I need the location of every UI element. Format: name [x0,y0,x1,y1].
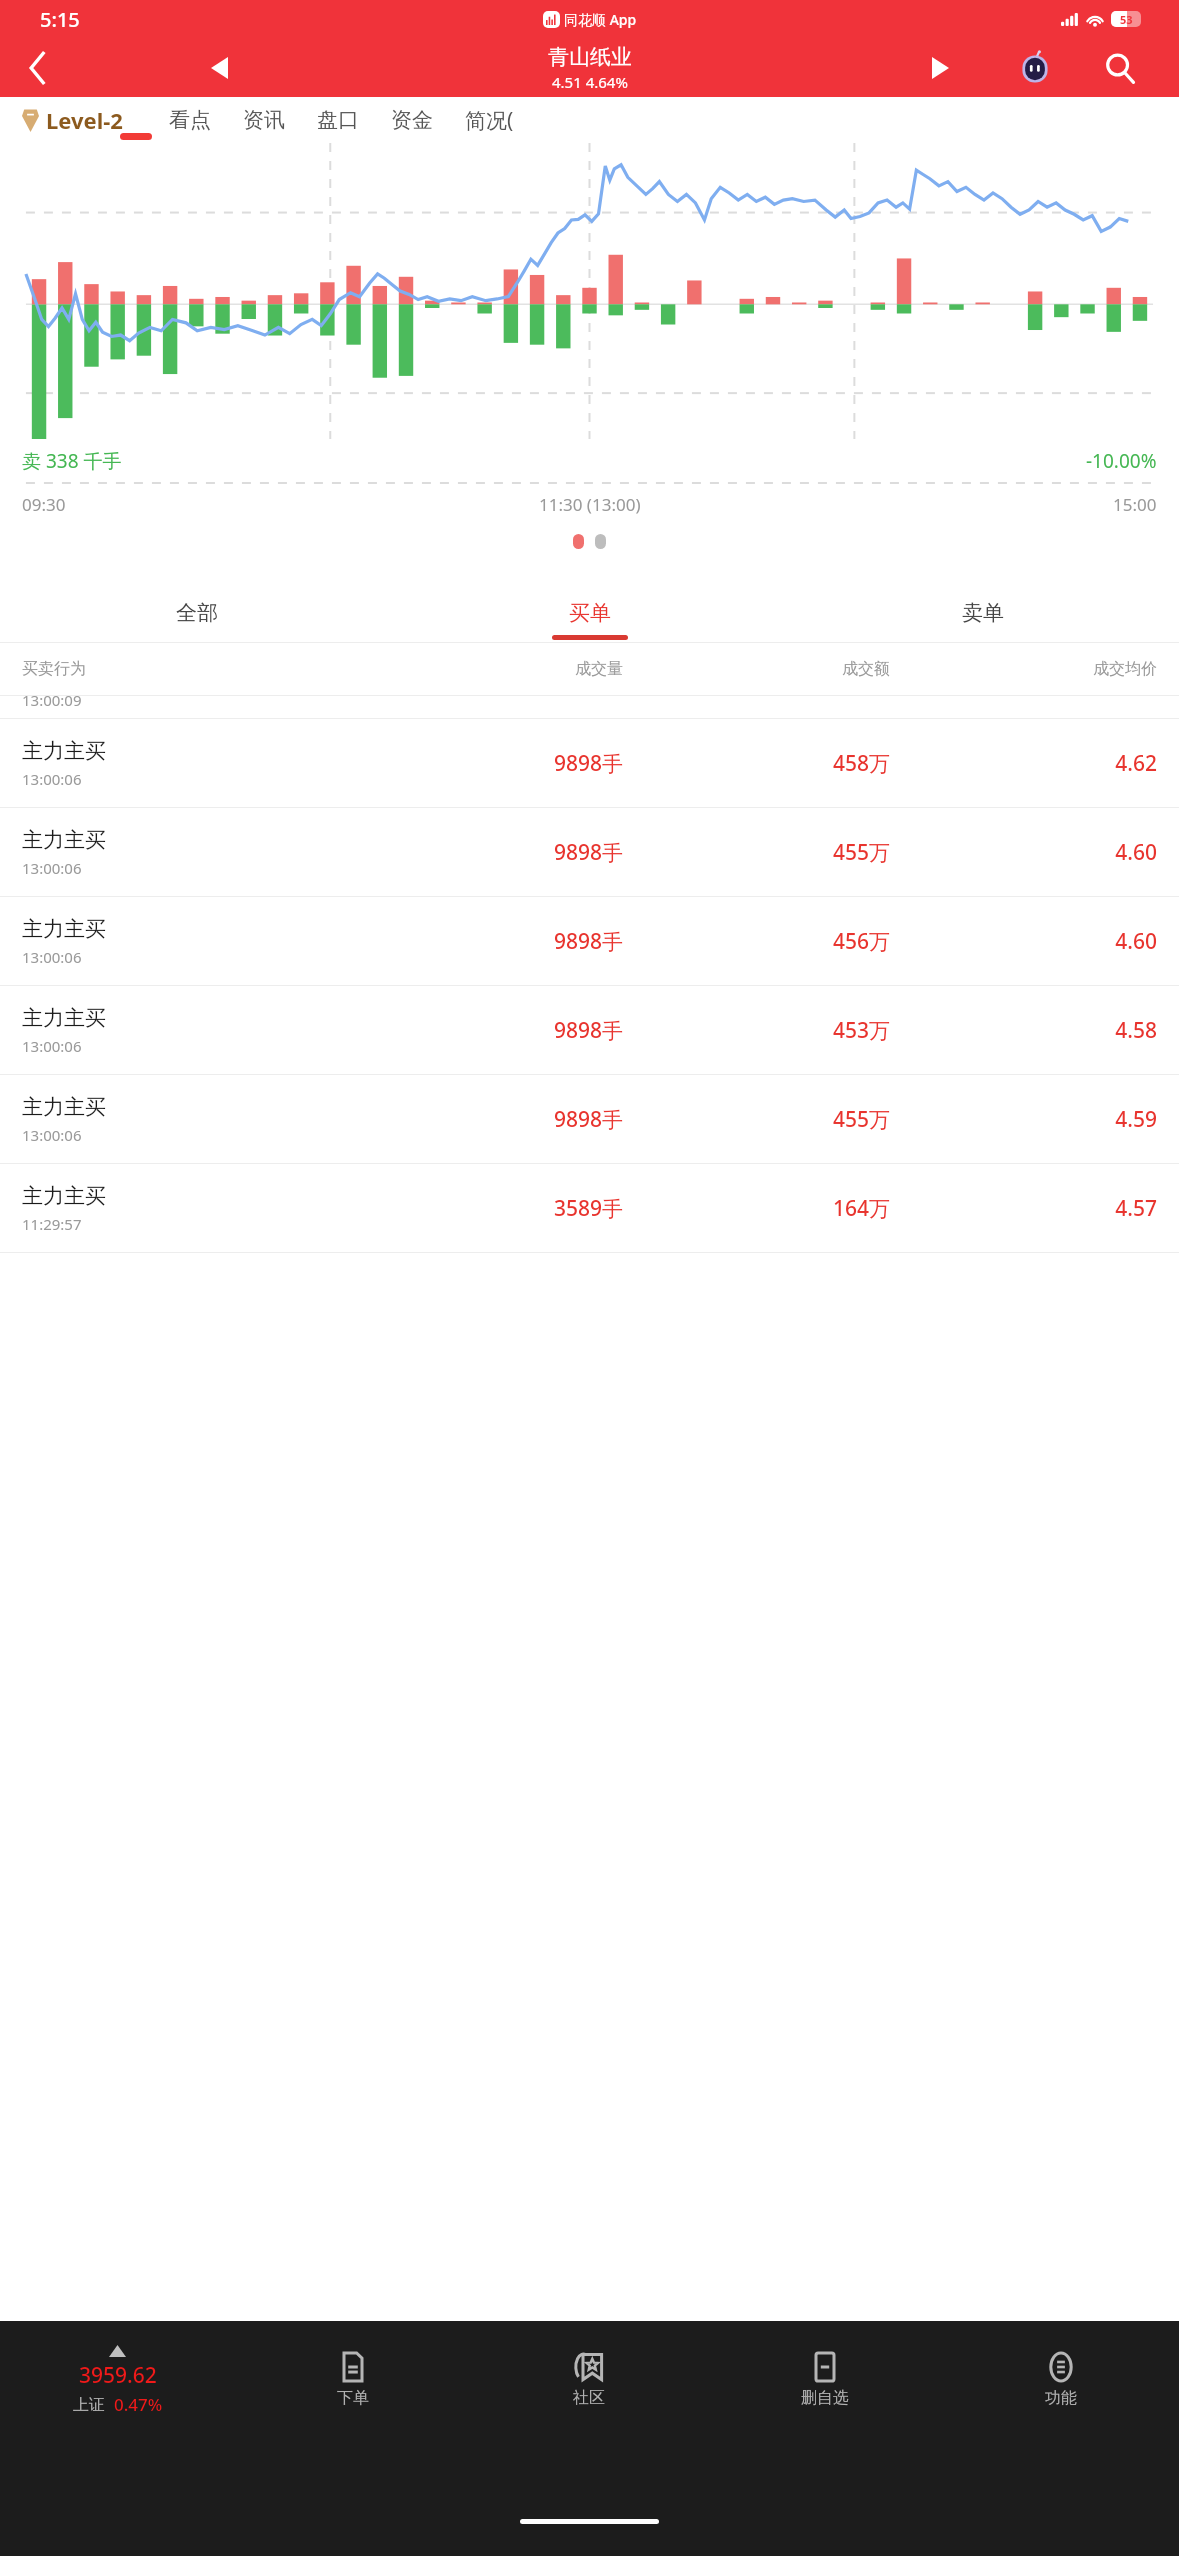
staticText: 主力主买 [22,827,106,853]
staticText: 主力主买 [22,916,106,942]
staticText: 主力主买 [22,1005,106,1031]
staticText: 13:00:06 [22,1036,82,1056]
staticText: 09:30 [22,493,66,516]
staticText: 上证 [73,2395,105,2415]
button[interactable]: 资金 [375,107,449,133]
button[interactable] [573,534,584,549]
staticText: 4.62 [890,749,1157,778]
staticText: 453万 [623,1016,890,1045]
staticText: 3959.62 [79,2361,157,2390]
button[interactable]: 主力主买 [0,719,1179,807]
button[interactable]: 13:00:09 [0,696,1179,718]
staticText: 13:00:06 [22,858,82,878]
staticText: 卖单 [962,600,1004,626]
staticText: 3589手 [356,1194,623,1223]
staticText: 13:00:06 [22,947,82,967]
staticText: 15:00 [1113,493,1157,516]
button[interactable]: 看点 [153,107,227,133]
button[interactable]: AI assistant [1009,42,1061,94]
staticText: 删自选 [801,2388,849,2408]
button[interactable]: 买单 [393,584,786,642]
staticText: Level-2 [46,105,123,135]
button[interactable]: 全部 [0,584,393,642]
button[interactable]: 主力主买 [0,986,1179,1074]
staticText: 13:00:06 [22,1125,82,1145]
button[interactable]: Back [0,38,76,97]
button[interactable]: 卖单 [786,584,1179,642]
staticText: 买单 [569,600,611,626]
button[interactable]: 社区 [471,2321,707,2439]
staticText: 简况( [465,106,514,135]
staticText: 成交额 [623,659,890,679]
button[interactable]: 主力主买 [0,897,1179,985]
staticText: 4.58 [890,1016,1157,1045]
staticText: 458万 [623,749,890,778]
button[interactable]: 删自选 [707,2321,943,2439]
staticText: 4.59 [890,1105,1157,1134]
button[interactable]: Level-2 [22,105,123,135]
button[interactable]: Next stock [911,39,969,97]
button[interactable]: 主力主买 [0,808,1179,896]
staticText: 同花顺 App [564,10,637,29]
button[interactable]: 盘口 [301,107,375,133]
staticText: 全部 [176,600,218,626]
staticText: 9898手 [356,749,623,778]
staticText: 11:30 (13:00) [539,493,641,516]
button[interactable]: 3959.62 [0,2345,235,2416]
staticText: 主力主买 [22,1183,106,1209]
button[interactable]: 资讯 [227,107,301,133]
staticText: 5:15 [40,6,80,33]
staticText: 社区 [573,2388,605,2408]
staticText: 成交量 [356,659,623,679]
staticText: 资讯 [243,107,285,133]
staticText: 9898手 [356,927,623,956]
staticText: -10.00% [1086,448,1157,474]
staticText: 功能 [1045,2388,1077,2408]
staticText: 看点 [169,107,211,133]
staticText: 455万 [623,838,890,867]
staticText: 9898手 [356,1105,623,1134]
staticText: 455万 [623,1105,890,1134]
button[interactable]: 简况( [449,106,530,135]
button[interactable]: 主力主买 [0,1075,1179,1163]
staticText: 11:29:57 [22,1214,82,1234]
button[interactable] [595,534,606,549]
button[interactable]: Previous stock [190,39,248,97]
button[interactable]: 功能 [943,2321,1179,2439]
staticText: 53 [1120,12,1133,27]
staticText: 9898手 [356,838,623,867]
staticText: 4.60 [890,927,1157,956]
staticText: 0.47% [114,2393,163,2416]
staticText: 4.57 [890,1194,1157,1223]
staticText: 下单 [337,2388,369,2408]
staticText: 主力主买 [22,1094,106,1120]
staticText: 456万 [623,927,890,956]
staticText: 卖 338 千手 [22,448,122,474]
staticText: 13:00:06 [22,769,82,789]
staticText: 成交均价 [890,659,1157,679]
button[interactable]: 主力主买 [0,1164,1179,1252]
staticText: 9898手 [356,1016,623,1045]
staticText: 盘口 [317,107,359,133]
staticText: 买卖行为 [22,659,356,679]
staticText: 资金 [391,107,433,133]
staticText: 164万 [623,1194,890,1223]
staticText: 4.60 [890,838,1157,867]
button[interactable]: 下单 [235,2321,471,2439]
staticText: 青山纸业 [548,44,632,70]
button[interactable]: Search [1091,39,1149,97]
staticText: 主力主买 [22,738,106,764]
staticText: 4.51 4.64% [552,72,628,92]
staticText: 13:00:09 [22,690,82,710]
